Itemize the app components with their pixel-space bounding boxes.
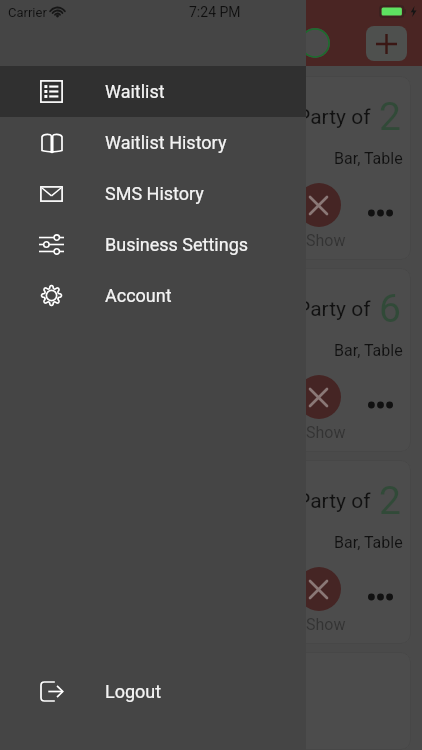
- staticText: Business Settings: [105, 234, 249, 255]
- button[interactable]: Logout: [0, 666, 306, 717]
- staticText: Check in: [32, 231, 93, 250]
- button[interactable]: Business Settings: [0, 219, 306, 270]
- staticText: Party of: [297, 105, 371, 130]
- button[interactable]: Waitlist History: [0, 117, 306, 168]
- button[interactable]: Profile: [300, 28, 330, 58]
- staticText: Account: [105, 285, 172, 306]
- staticText: Party of: [297, 489, 371, 514]
- staticText: Bar, Table: [334, 149, 403, 168]
- button[interactable]: Add: [366, 26, 407, 61]
- button[interactable]: Show: [297, 375, 341, 419]
- button[interactable]: SMS History: [0, 168, 306, 219]
- staticText: SMS History: [105, 183, 204, 204]
- button[interactable]: More options: [358, 383, 402, 427]
- button[interactable]: Show: [297, 183, 341, 227]
- staticText: Show: [306, 423, 346, 442]
- staticText: Show: [306, 615, 346, 634]
- button[interactable]: More options: [358, 575, 402, 619]
- staticText: Logout: [105, 681, 162, 702]
- button[interactable]: Check in: [23, 183, 67, 227]
- staticText: 2: [379, 478, 401, 524]
- staticText: Show: [306, 231, 346, 250]
- staticText: 6: [379, 286, 401, 332]
- staticText: 7:24 PM: [189, 4, 241, 20]
- staticText: Bar, Table: [334, 341, 403, 360]
- staticText: Brian: [27, 292, 78, 318]
- button[interactable]: More options: [358, 191, 402, 235]
- button[interactable]: [11, 652, 411, 750]
- button[interactable]: Show: [297, 567, 341, 611]
- staticText: 2: [379, 94, 401, 140]
- button[interactable]: Waitlist: [0, 66, 306, 117]
- staticText: Waitlist: [105, 81, 165, 102]
- staticText: Bar, Table: [334, 533, 403, 552]
- button[interactable]: Party of: [11, 460, 411, 644]
- button[interactable]: Account: [0, 270, 306, 321]
- staticText: 7:05 PM: [27, 149, 94, 170]
- button[interactable]: Party of: [11, 268, 411, 452]
- staticText: Carrier: [8, 5, 47, 20]
- staticText: Waitlist History: [105, 132, 227, 153]
- button[interactable]: Party of: [11, 76, 411, 260]
- staticText: Anna: [27, 100, 78, 126]
- staticText: Party of: [297, 297, 371, 322]
